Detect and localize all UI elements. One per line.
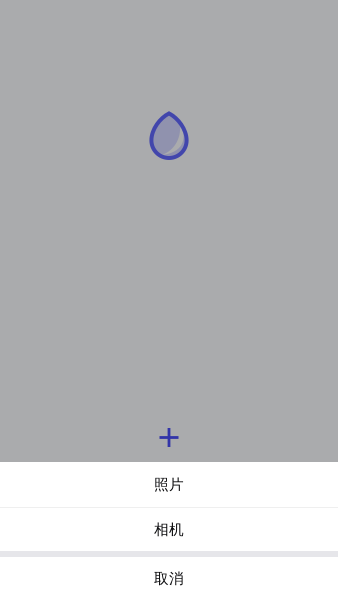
button[interactable]: 取消 [0, 557, 338, 600]
staticText: 相机 [154, 520, 184, 538]
button[interactable]: 相机 [0, 508, 338, 551]
button[interactable]: Add [158, 427, 179, 448]
staticText: 取消 [154, 569, 184, 587]
button[interactable]: 照片 [0, 462, 338, 507]
staticText: 照片 [154, 475, 184, 493]
